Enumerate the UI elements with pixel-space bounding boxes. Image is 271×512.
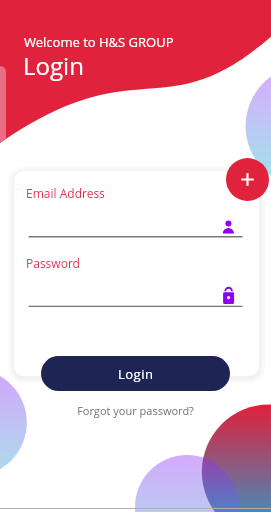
staticText: Forgot your password? — [77, 403, 194, 418]
button[interactable]: Add — [226, 158, 269, 201]
staticText: Password — [26, 255, 80, 271]
staticText: Login — [118, 365, 154, 383]
staticText: Email Address — [26, 185, 105, 201]
staticText: Login — [23, 49, 84, 82]
button[interactable]: Login — [41, 356, 230, 391]
button[interactable]: Forgot your password? — [0, 401, 271, 419]
staticText: Welcome to H&S GROUP — [24, 33, 174, 51]
